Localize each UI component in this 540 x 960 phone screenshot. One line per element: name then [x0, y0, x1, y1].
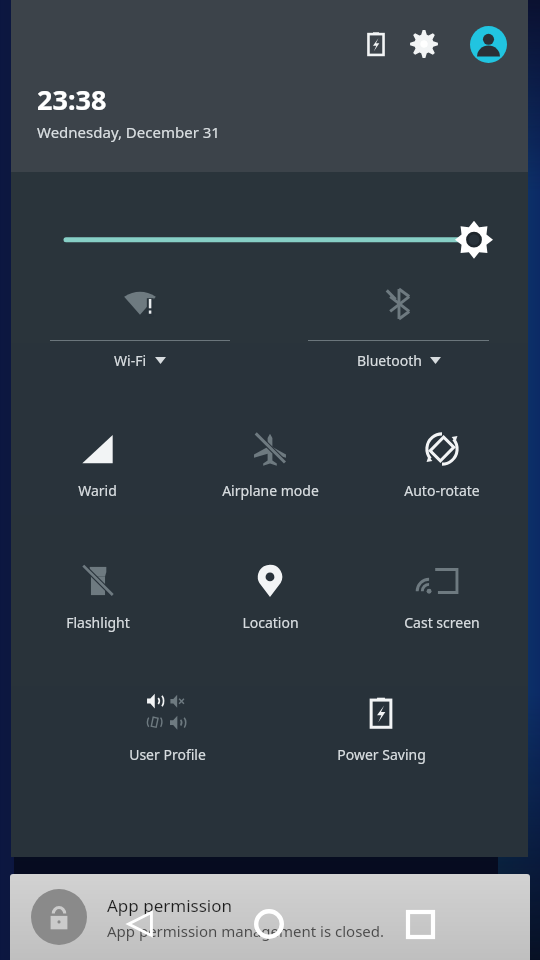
button[interactable]: Location: [184, 547, 356, 632]
button[interactable]: User account: [466, 22, 510, 66]
button[interactable]: Flashlight: [11, 547, 184, 632]
staticText: App permission management is closed.: [107, 921, 385, 941]
button[interactable]: App permission: [10, 874, 530, 960]
staticText: Airplane mode: [222, 481, 319, 500]
staticText: Auto-rotate: [404, 481, 480, 500]
staticText: User Profile: [129, 745, 206, 764]
staticText: Power Saving: [337, 745, 426, 764]
button[interactable]: Recent apps: [388, 895, 452, 953]
button[interactable]: Battery charging: [354, 22, 398, 66]
staticText: Wednesday, December 31: [37, 122, 220, 142]
button[interactable]: Power Saving: [309, 679, 453, 764]
staticText: Wi-Fi: [114, 351, 147, 370]
button[interactable]: User Profile: [95, 679, 239, 764]
staticText: Flashlight: [66, 613, 130, 632]
button[interactable]: Airplane mode: [184, 415, 356, 500]
button[interactable]: Brightness: [11, 172, 528, 244]
button[interactable]: Back: [108, 895, 172, 953]
staticText: Cast screen: [404, 613, 480, 632]
staticText: 23:38: [37, 81, 107, 118]
staticText: Bluetooth: [357, 351, 422, 370]
button[interactable]: Auto-rotate: [356, 415, 528, 500]
button[interactable]: Home: [237, 895, 301, 953]
staticText: App permission: [107, 894, 233, 917]
button[interactable]: Wi-Fi: [11, 268, 269, 370]
button[interactable]: Warid: [11, 415, 184, 500]
staticText: Location: [242, 613, 299, 632]
button[interactable]: Settings: [402, 22, 446, 66]
button[interactable]: Bluetooth: [269, 268, 528, 370]
button[interactable]: Cast screen: [356, 547, 528, 632]
staticText: Warid: [78, 481, 117, 500]
